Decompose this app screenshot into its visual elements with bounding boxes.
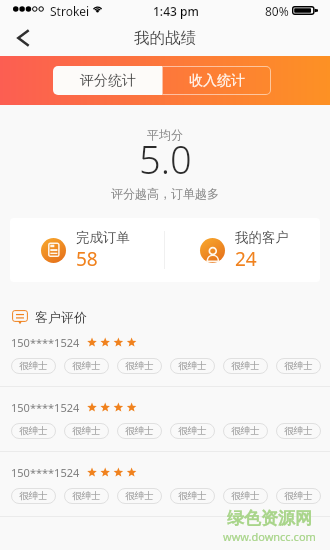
staticText: Strokei <box>50 3 90 19</box>
button[interactable]: 很绅士 <box>276 488 321 504</box>
button[interactable]: 150****1524 <box>0 322 330 386</box>
staticText: 150****1524 <box>11 400 80 415</box>
button[interactable]: 150****1524 <box>0 452 330 516</box>
staticText: 150****1524 <box>11 335 80 350</box>
staticText: 平均分 <box>147 127 183 142</box>
button[interactable]: 很绅士 <box>64 488 109 504</box>
button[interactable]: 评分统计 <box>53 66 162 95</box>
staticText: 24 <box>235 246 257 272</box>
staticText: 完成订单 <box>76 229 130 246</box>
button[interactable]: 很绅士 <box>117 488 162 504</box>
staticText: 58 <box>76 246 98 272</box>
button[interactable]: 很绅士 <box>11 488 56 504</box>
button[interactable]: 很绅士 <box>223 358 268 374</box>
staticText: 很绅士 <box>284 360 313 372</box>
staticText: 很绅士 <box>284 425 313 437</box>
staticText: 很绅士 <box>72 425 101 437</box>
staticText: 客户评价 <box>35 309 87 325</box>
button[interactable]: 很绅士 <box>64 358 109 374</box>
staticText: 1:43 pm <box>153 3 199 19</box>
button[interactable]: 很绅士 <box>276 423 321 439</box>
staticText: www.downcc.com <box>223 529 316 544</box>
button[interactable]: 很绅士 <box>170 423 215 439</box>
button[interactable]: 完成订单 <box>10 218 164 282</box>
staticText: 很绅士 <box>19 425 48 437</box>
staticText: 我的战绩 <box>134 28 196 48</box>
button[interactable]: 很绅士 <box>170 358 215 374</box>
staticText: 150****1524 <box>11 465 80 480</box>
staticText: 很绅士 <box>125 490 154 502</box>
staticText: 很绅士 <box>19 360 48 372</box>
button[interactable]: 收入统计 <box>162 66 271 95</box>
staticText: 很绅士 <box>231 360 260 372</box>
button[interactable]: 很绅士 <box>276 358 321 374</box>
staticText: 很绅士 <box>284 490 313 502</box>
staticText: 很绅士 <box>178 490 207 502</box>
staticText: 评分越高，订单越多 <box>111 186 219 201</box>
staticText: 我的客户 <box>235 229 289 246</box>
staticText: 很绅士 <box>125 360 154 372</box>
staticText: 很绅士 <box>178 360 207 372</box>
staticText: 很绅士 <box>231 425 260 437</box>
staticText: 评分统计 <box>80 72 136 90</box>
button[interactable]: 我的客户 <box>165 218 320 282</box>
button[interactable]: 很绅士 <box>117 423 162 439</box>
staticText: 很绅士 <box>19 490 48 502</box>
staticText: 绿色资源网 <box>227 508 312 529</box>
staticText: 很绅士 <box>178 425 207 437</box>
button[interactable]: 150****1524 <box>0 387 330 451</box>
staticText: 很绅士 <box>72 490 101 502</box>
staticText: 很绅士 <box>125 425 154 437</box>
button[interactable]: 很绅士 <box>223 423 268 439</box>
staticText: 5.0 <box>139 133 192 185</box>
button[interactable]: 很绅士 <box>11 423 56 439</box>
button[interactable]: 很绅士 <box>11 358 56 374</box>
staticText: 很绅士 <box>72 360 101 372</box>
button[interactable]: 很绅士 <box>170 488 215 504</box>
button[interactable]: 很绅士 <box>64 423 109 439</box>
button[interactable]: 很绅士 <box>117 358 162 374</box>
button[interactable]: 很绅士 <box>223 488 268 504</box>
staticText: 很绅士 <box>231 490 260 502</box>
button[interactable]: Back <box>0 22 46 56</box>
staticText: 80% <box>265 3 289 19</box>
staticText: 收入统计 <box>189 72 245 90</box>
